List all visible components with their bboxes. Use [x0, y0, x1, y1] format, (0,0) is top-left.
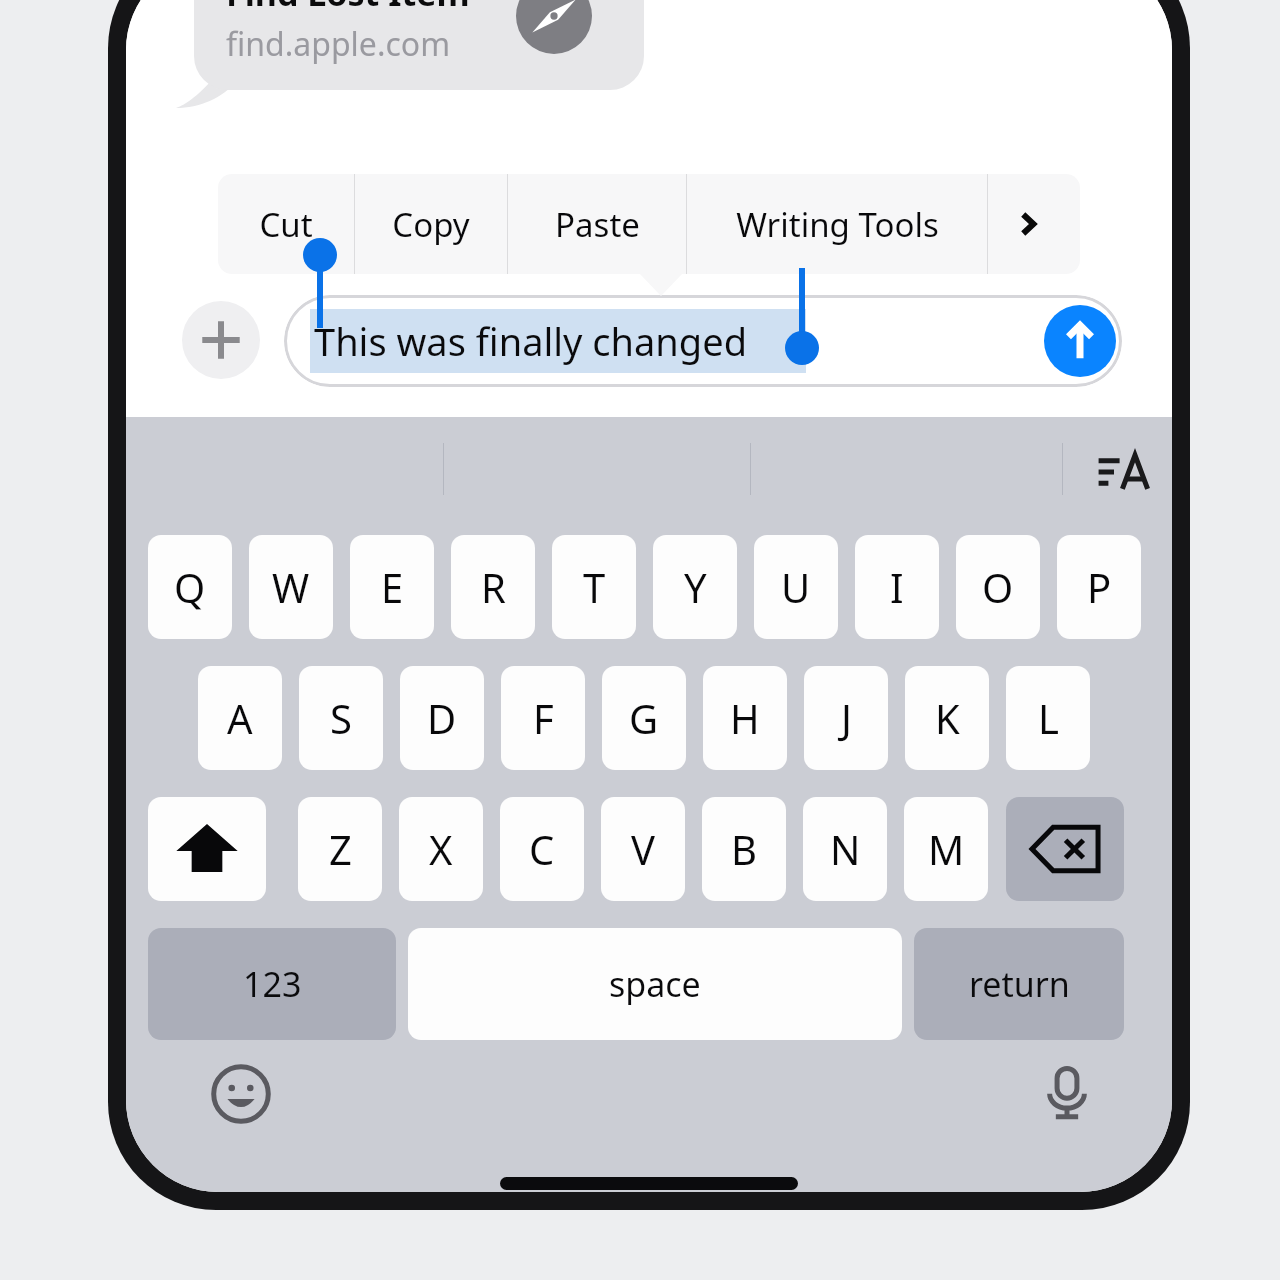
button[interactable]: return — [914, 928, 1124, 1040]
staticText: K — [935, 691, 960, 745]
button[interactable]: Z — [298, 797, 382, 901]
staticText: Cut — [259, 202, 313, 247]
staticText: X — [429, 822, 453, 876]
button[interactable]: R — [451, 535, 535, 639]
staticText: R — [481, 560, 506, 614]
staticText: Y — [684, 560, 707, 614]
button[interactable]: Q — [148, 535, 232, 639]
staticText: V — [631, 822, 655, 876]
button[interactable]: W — [249, 535, 333, 639]
button[interactable]: Delete — [1006, 797, 1124, 901]
button[interactable]: B — [702, 797, 786, 901]
staticText: Copy — [392, 202, 470, 247]
button[interactable]: Send — [1044, 305, 1116, 377]
button[interactable]: Safari link — [516, 0, 592, 54]
button[interactable]: H — [703, 666, 787, 770]
button[interactable]: Formatting — [1086, 437, 1156, 507]
button[interactable]: P — [1057, 535, 1141, 639]
button[interactable]: G — [602, 666, 686, 770]
staticText: Writing Tools — [736, 202, 939, 247]
staticText: O — [982, 560, 1014, 614]
staticText: Q — [174, 560, 206, 614]
button[interactable]: 123 — [148, 928, 396, 1040]
staticText: C — [529, 822, 555, 876]
staticText: I — [890, 560, 904, 614]
button[interactable]: Dictation — [1036, 1061, 1098, 1123]
button[interactable]: U — [754, 535, 838, 639]
button[interactable]: This was finally changed — [284, 295, 1122, 387]
button[interactable]: V — [601, 797, 685, 901]
button[interactable]: T — [552, 535, 636, 639]
button[interactable]: More — [988, 174, 1068, 274]
staticText: N — [830, 822, 861, 876]
button[interactable]: S — [299, 666, 383, 770]
staticText: A — [227, 691, 253, 745]
button[interactable]: Shift — [148, 797, 266, 901]
staticText: E — [381, 560, 404, 614]
button[interactable]: E — [350, 535, 434, 639]
button[interactable]: Y — [653, 535, 737, 639]
button[interactable]: F — [501, 666, 585, 770]
staticText: T — [583, 560, 606, 614]
staticText: M — [928, 822, 965, 876]
staticText: find.apple.com — [226, 22, 451, 66]
button[interactable]: I — [855, 535, 939, 639]
staticText: 123 — [243, 961, 302, 1007]
staticText: H — [730, 691, 760, 745]
button[interactable]: J — [804, 666, 888, 770]
button[interactable]: Find Lost Item — [194, 0, 644, 90]
button[interactable]: L — [1006, 666, 1090, 770]
button[interactable]: Writing Tools — [687, 174, 987, 274]
staticText: P — [1087, 560, 1112, 614]
staticText: G — [629, 691, 659, 745]
staticText: B — [731, 822, 757, 876]
button[interactable]: Paste — [508, 174, 686, 274]
button[interactable]: M — [904, 797, 988, 901]
button[interactable]: Cut — [218, 174, 354, 274]
staticText: Paste — [555, 202, 640, 247]
button[interactable]: C — [500, 797, 584, 901]
staticText: space — [609, 961, 701, 1007]
button[interactable]: Emoji — [210, 1063, 272, 1125]
button[interactable]: K — [905, 666, 989, 770]
staticText: U — [781, 560, 811, 614]
button[interactable]: O — [956, 535, 1040, 639]
staticText: D — [427, 691, 457, 745]
staticText: W — [272, 560, 310, 614]
button[interactable]: Add attachment — [182, 301, 260, 379]
button[interactable]: D — [400, 666, 484, 770]
staticText: F — [533, 691, 554, 745]
staticText: L — [1038, 691, 1059, 745]
button[interactable]: N — [803, 797, 887, 901]
button[interactable]: space — [408, 928, 902, 1040]
staticText: Find Lost Item — [226, 0, 470, 16]
button[interactable]: A — [198, 666, 282, 770]
staticText: This was finally changed — [314, 315, 748, 367]
staticText: J — [841, 691, 852, 745]
staticText: Z — [329, 822, 352, 876]
staticText: S — [330, 691, 352, 745]
staticText: return — [969, 961, 1070, 1007]
button[interactable]: Copy — [355, 174, 507, 274]
button[interactable]: X — [399, 797, 483, 901]
